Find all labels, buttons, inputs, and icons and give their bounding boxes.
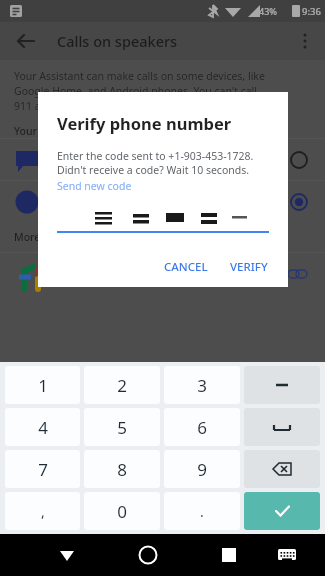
button[interactable]: Send new code [57,179,132,193]
button[interactable]: 7 [5,450,80,488]
staticText: 5 [117,416,127,439]
staticText: Verify phone number [57,112,232,134]
staticText: 2 [117,374,127,397]
button[interactable]: Back [50,538,84,572]
button[interactable]: Project Fi [0,253,325,295]
staticText: CANCEL [164,259,208,275]
button[interactable]: 0 [84,492,160,530]
button[interactable]: Switch keyboard [272,540,302,570]
button[interactable]: 1 [5,366,80,404]
staticText: More services [14,230,84,244]
staticText: 9:36 [302,5,321,18]
button[interactable]: Recent apps [212,538,246,572]
staticText: 1 [38,374,48,397]
staticText: Send new code [57,179,132,193]
staticText: 9 [197,458,207,481]
button[interactable]: 2 [84,366,160,404]
button[interactable] [0,181,325,222]
button[interactable]: Backspace [244,450,320,488]
button[interactable] [0,139,325,180]
button[interactable]: VERIFY [222,253,276,281]
staticText: Your phone [14,124,72,138]
staticText: . [200,502,204,521]
button[interactable]: . [164,492,240,530]
staticText: Enter the code sent to +1-903-453-1728. … [57,149,254,177]
staticText: Your Assistant can make calls on some de… [14,69,265,113]
button[interactable]: 3 [164,366,240,404]
button[interactable]: Back [8,25,40,57]
button[interactable]: Minus [244,366,320,404]
staticText: , [41,502,45,521]
button[interactable]: CANCEL [156,253,216,281]
button[interactable]: 8 [84,450,160,488]
button[interactable]: Home [131,538,165,572]
staticText: Calls on speakers [57,31,178,51]
button[interactable]: Enter [244,492,320,530]
button[interactable]: 9 [164,450,240,488]
staticText: 6 [197,416,207,439]
button[interactable]: 5 [84,408,160,446]
button[interactable]: Space [244,408,320,446]
button[interactable]: 6 [164,408,240,446]
staticText: 3 [197,374,207,397]
staticText: 7 [38,458,48,481]
button[interactable]: 4 [5,408,80,446]
staticText: 4 [38,416,48,439]
staticText: VERIFY [230,259,268,275]
button[interactable]: , [5,492,80,530]
staticText: 43% [259,5,277,17]
staticText: 0 [117,500,127,523]
button[interactable]: More options [289,25,321,57]
staticText: 8 [117,458,127,481]
